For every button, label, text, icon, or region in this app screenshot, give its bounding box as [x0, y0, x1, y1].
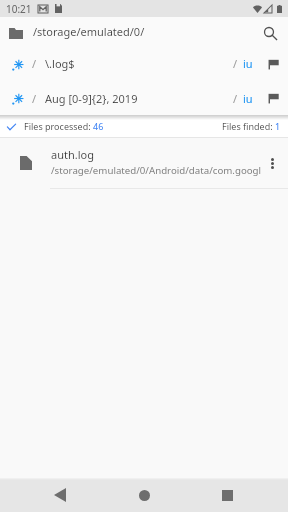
staticText: 1: [275, 120, 281, 132]
button[interactable]: Back: [40, 478, 80, 512]
button[interactable]: Flag: [261, 52, 285, 76]
button[interactable]: /: [0, 46, 288, 81]
staticText: /: [32, 91, 37, 106]
staticText: /storage/emulated/0/Android/data/com.goo…: [51, 164, 261, 177]
staticText: \.log$: [45, 56, 75, 71]
button[interactable]: More options: [261, 152, 283, 174]
staticText: Files processed:: [24, 120, 93, 132]
button[interactable]: Flag: [261, 86, 285, 110]
button[interactable]: auth.log: [0, 138, 288, 188]
staticText: /: [233, 56, 238, 71]
button[interactable]: Home: [124, 478, 164, 512]
staticText: 46: [93, 120, 104, 132]
staticText: Files finded:: [222, 120, 275, 132]
staticText: /: [233, 91, 238, 106]
staticText: 10:21: [6, 2, 32, 16]
button[interactable]: /storage/emulated/0/: [0, 17, 288, 46]
button[interactable]: /: [0, 81, 288, 115]
button[interactable]: Recents: [207, 478, 247, 512]
staticText: Aug [0-9]{2}, 2019: [45, 91, 138, 106]
staticText: /storage/emulated/0/: [33, 24, 145, 39]
staticText: auth.log: [51, 147, 94, 162]
button[interactable]: Search: [256, 17, 285, 46]
staticText: /: [32, 56, 37, 71]
staticText: iu: [243, 56, 253, 71]
staticText: iu: [243, 91, 253, 106]
